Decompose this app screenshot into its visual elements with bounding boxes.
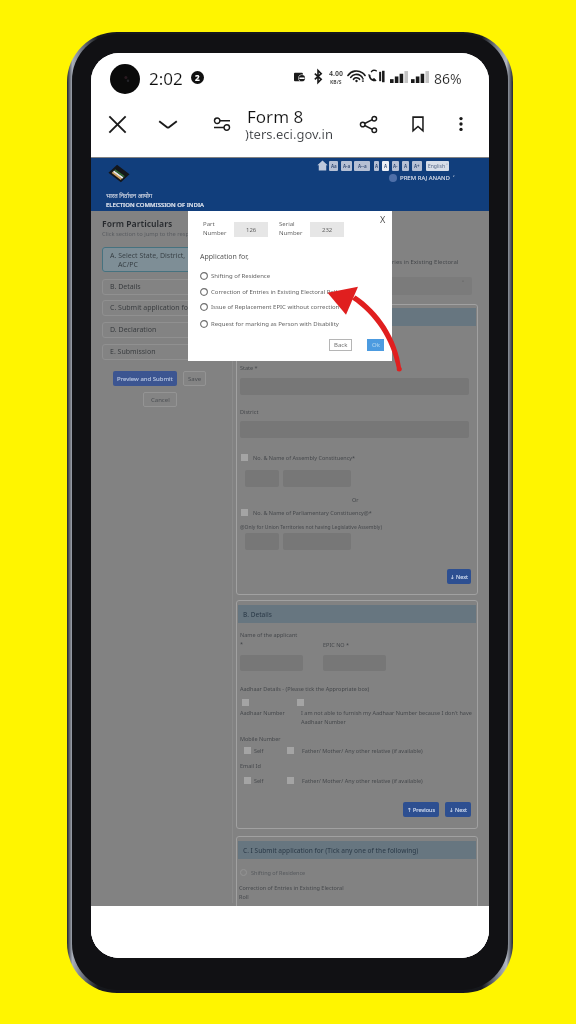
staticText: B. Details [110,282,141,292]
button[interactable]: A [402,161,409,171]
staticText: Part Number [203,220,227,237]
button[interactable]: ↑ Previous [403,802,439,817]
staticText: Shifting of Residence [211,272,271,280]
button[interactable]: A [382,161,389,171]
staticText: A [384,163,388,169]
button[interactable]: Home [317,160,328,171]
staticText: English ˅ [428,163,448,170]
button[interactable]: X [380,213,386,225]
button[interactable]: C. I Submit application for (Tick any on… [238,841,476,859]
staticText: Ok [372,341,380,349]
button[interactable]: B. Details [102,279,227,295]
staticText: Name of the applicant [240,631,298,638]
staticText: Father/ Mother/ Any other relative (if a… [302,747,423,754]
button[interactable]: Close [100,107,134,141]
staticText: PREM RAJ ANAND [400,174,450,182]
staticText: Aadhaar Number [240,709,285,716]
staticText: Serial Number [279,220,303,237]
button[interactable]: Back [329,339,352,351]
staticText: A-a [343,163,351,169]
button[interactable]: A. Select State, District, AC/PC & Const… [238,308,476,326]
staticText: Shifting of Residence [251,869,306,876]
staticText: E. Submission [110,347,156,357]
staticText: A+ [414,163,420,169]
staticText: C. Submit application for [110,303,191,313]
staticText: A. Select State, District, AC/PC & Const… [243,313,386,322]
button[interactable]: Correction of Entries in Existing Electo… [200,288,338,296]
staticText: Application for, [200,252,249,262]
staticText: 232 [322,226,333,234]
button[interactable]: Issue of Replacement EPIC without correc… [200,303,340,311]
staticText: Email Id [240,762,261,769]
button[interactable]: ↓ Next [447,569,471,584]
staticText: Father/ Mother/ Any other relative (if a… [302,777,423,784]
button[interactable]: A [374,161,379,171]
button[interactable]: D. Declaration [102,322,227,338]
staticText: Self [254,777,264,784]
staticText: B. Details [243,610,273,619]
staticText: Issue of Replacement EPIC without correc… [211,303,340,311]
staticText: Correction of Entries in Existing Electo… [239,884,344,891]
staticText: भारत निर्वाचन आयोग [106,192,153,200]
staticText: Roll/Replacement of EPIC/Marking of PWD [240,267,360,275]
staticText: Form 8 [247,105,304,128]
button[interactable]: More options [444,107,478,141]
button[interactable]: Save [183,371,206,386]
staticText: @Only for Union Territories not having L… [240,524,382,531]
staticText: 4.00 [329,69,343,79]
staticText: 86% [434,69,462,88]
button[interactable]: Page settings [205,107,239,141]
staticText: A [404,163,408,169]
button[interactable]: English ˅ [426,161,449,171]
button[interactable]: C. Submit application for [102,300,227,316]
button[interactable]: A-a [341,161,352,171]
button[interactable]: Cancel [143,392,177,407]
staticText: ↑ Previous [407,806,436,813]
button[interactable]: A. Select State, District, [102,247,227,272]
staticText: KB/S [330,79,342,86]
button[interactable]: Shifting of Residence [200,272,271,280]
button[interactable]: Aa [329,161,338,171]
staticText: A. Select State, District, [110,251,186,261]
staticText: A--a [358,163,367,169]
button[interactable]: Preview and Submit [113,371,177,386]
button[interactable]: English [280,277,472,295]
button[interactable]: A+ [412,161,422,171]
staticText: State * [240,364,258,371]
staticText: Cancel [151,396,170,404]
staticText: Preview and Submit [117,375,173,383]
button[interactable]: E. Submission [102,344,227,360]
button[interactable]: A--a [354,161,370,171]
staticText: District [240,408,259,415]
button[interactable]: ↓ Next [445,802,471,817]
staticText: A [375,163,379,169]
button[interactable]: Collapse [151,107,185,141]
staticText: ˅ [453,175,455,182]
staticText: A- [393,163,398,169]
staticText: Aa [331,163,337,169]
staticText: Save [188,375,202,383]
staticText: Form Particulars [102,218,173,230]
staticText: ↓ Next [449,806,468,813]
button[interactable]: B. Details [238,605,476,623]
staticText: Aadhaar Details - (Please tick the Appro… [240,685,370,692]
staticText: Self [254,747,264,754]
staticText: Back [334,341,348,349]
staticText: 2 [195,72,200,83]
button[interactable]: Bookmark [401,107,435,141]
button[interactable]: A- [392,161,399,171]
staticText: D. Declaration [110,325,157,335]
button[interactable]: Request for marking as Person with Disab… [200,320,339,328]
button[interactable]: Ok [367,339,384,351]
staticText: Application for Shifting of Residence/Co… [240,258,459,266]
button[interactable]: Share [351,107,385,141]
staticText: ELECTION COMMISSION OF INDIA [106,201,204,209]
